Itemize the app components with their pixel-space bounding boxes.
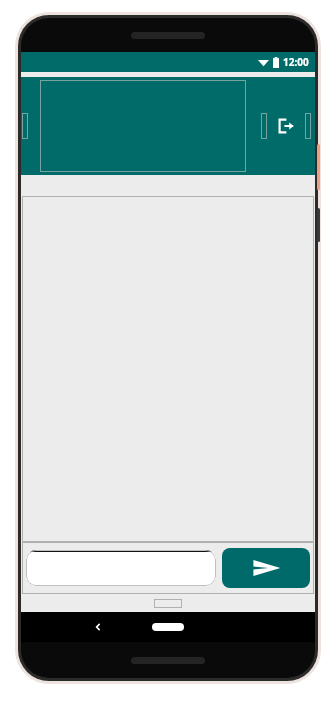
button[interactable]: Log out <box>271 111 301 141</box>
button[interactable]: Home <box>152 623 184 631</box>
staticText: 12:00 <box>283 55 309 69</box>
button[interactable]: Back <box>89 618 107 636</box>
button[interactable] <box>22 196 314 542</box>
button[interactable]: Send <box>222 548 310 588</box>
button[interactable] <box>26 550 216 586</box>
